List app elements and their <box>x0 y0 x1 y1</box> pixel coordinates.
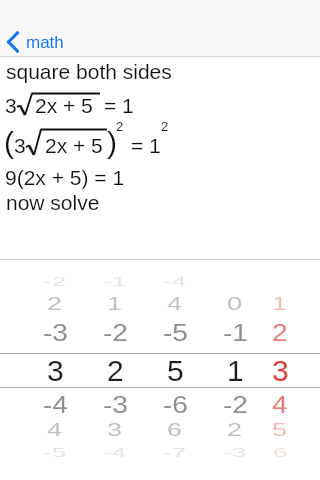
staticText: -5 <box>43 445 67 459</box>
staticText: now solve <box>6 191 100 214</box>
staticText: = 1 <box>104 94 134 117</box>
staticText: -1 <box>223 319 248 346</box>
staticText: 2 <box>107 354 124 388</box>
staticText: 3 <box>5 94 17 117</box>
staticText: 2x + 5 <box>45 134 103 157</box>
staticText: 3 <box>14 134 26 157</box>
staticText: 5 <box>272 419 288 440</box>
staticText: 2x + 5 <box>35 94 93 117</box>
staticText: square both sides <box>6 60 172 83</box>
staticText: 3 <box>107 419 123 440</box>
staticText: 4 <box>272 391 288 418</box>
staticText: -5 <box>163 319 188 346</box>
staticText: ( <box>4 126 14 160</box>
staticText: -2 <box>43 274 67 288</box>
staticText: 3 <box>272 354 289 388</box>
button[interactable]: math <box>6 31 64 53</box>
staticText: 1 <box>227 354 244 388</box>
staticText: 2 <box>47 293 63 314</box>
staticText: 4 <box>167 293 183 314</box>
staticText: ) <box>107 126 117 160</box>
staticText: 4 <box>47 419 63 440</box>
staticText: -3 <box>43 319 68 346</box>
staticText: 1 <box>272 293 288 314</box>
staticText: 2 <box>116 119 124 134</box>
staticText: 6 <box>273 445 288 459</box>
staticText: 9(2x + 5) = 1 <box>5 166 125 189</box>
button[interactable] <box>0 259 320 480</box>
staticText: -4 <box>163 274 187 288</box>
staticText: -7 <box>163 445 187 459</box>
staticText: -4 <box>103 445 127 459</box>
staticText: -4 <box>43 391 68 418</box>
staticText: -6 <box>163 391 188 418</box>
staticText: 2 <box>161 119 169 134</box>
staticText: 3 <box>47 354 64 388</box>
staticText: 1 <box>107 293 123 314</box>
staticText: 2 <box>272 319 288 346</box>
staticText: -3 <box>223 445 247 459</box>
staticText: 6 <box>167 419 183 440</box>
staticText: 5 <box>167 354 184 388</box>
staticText: -3 <box>103 391 128 418</box>
staticText: = 1 <box>131 134 161 157</box>
staticText: 2 <box>227 419 243 440</box>
staticText: -2 <box>223 391 248 418</box>
staticText: -1 <box>103 274 127 288</box>
staticText: 0 <box>227 293 243 314</box>
staticText: -2 <box>103 319 128 346</box>
staticText: math <box>26 33 64 52</box>
